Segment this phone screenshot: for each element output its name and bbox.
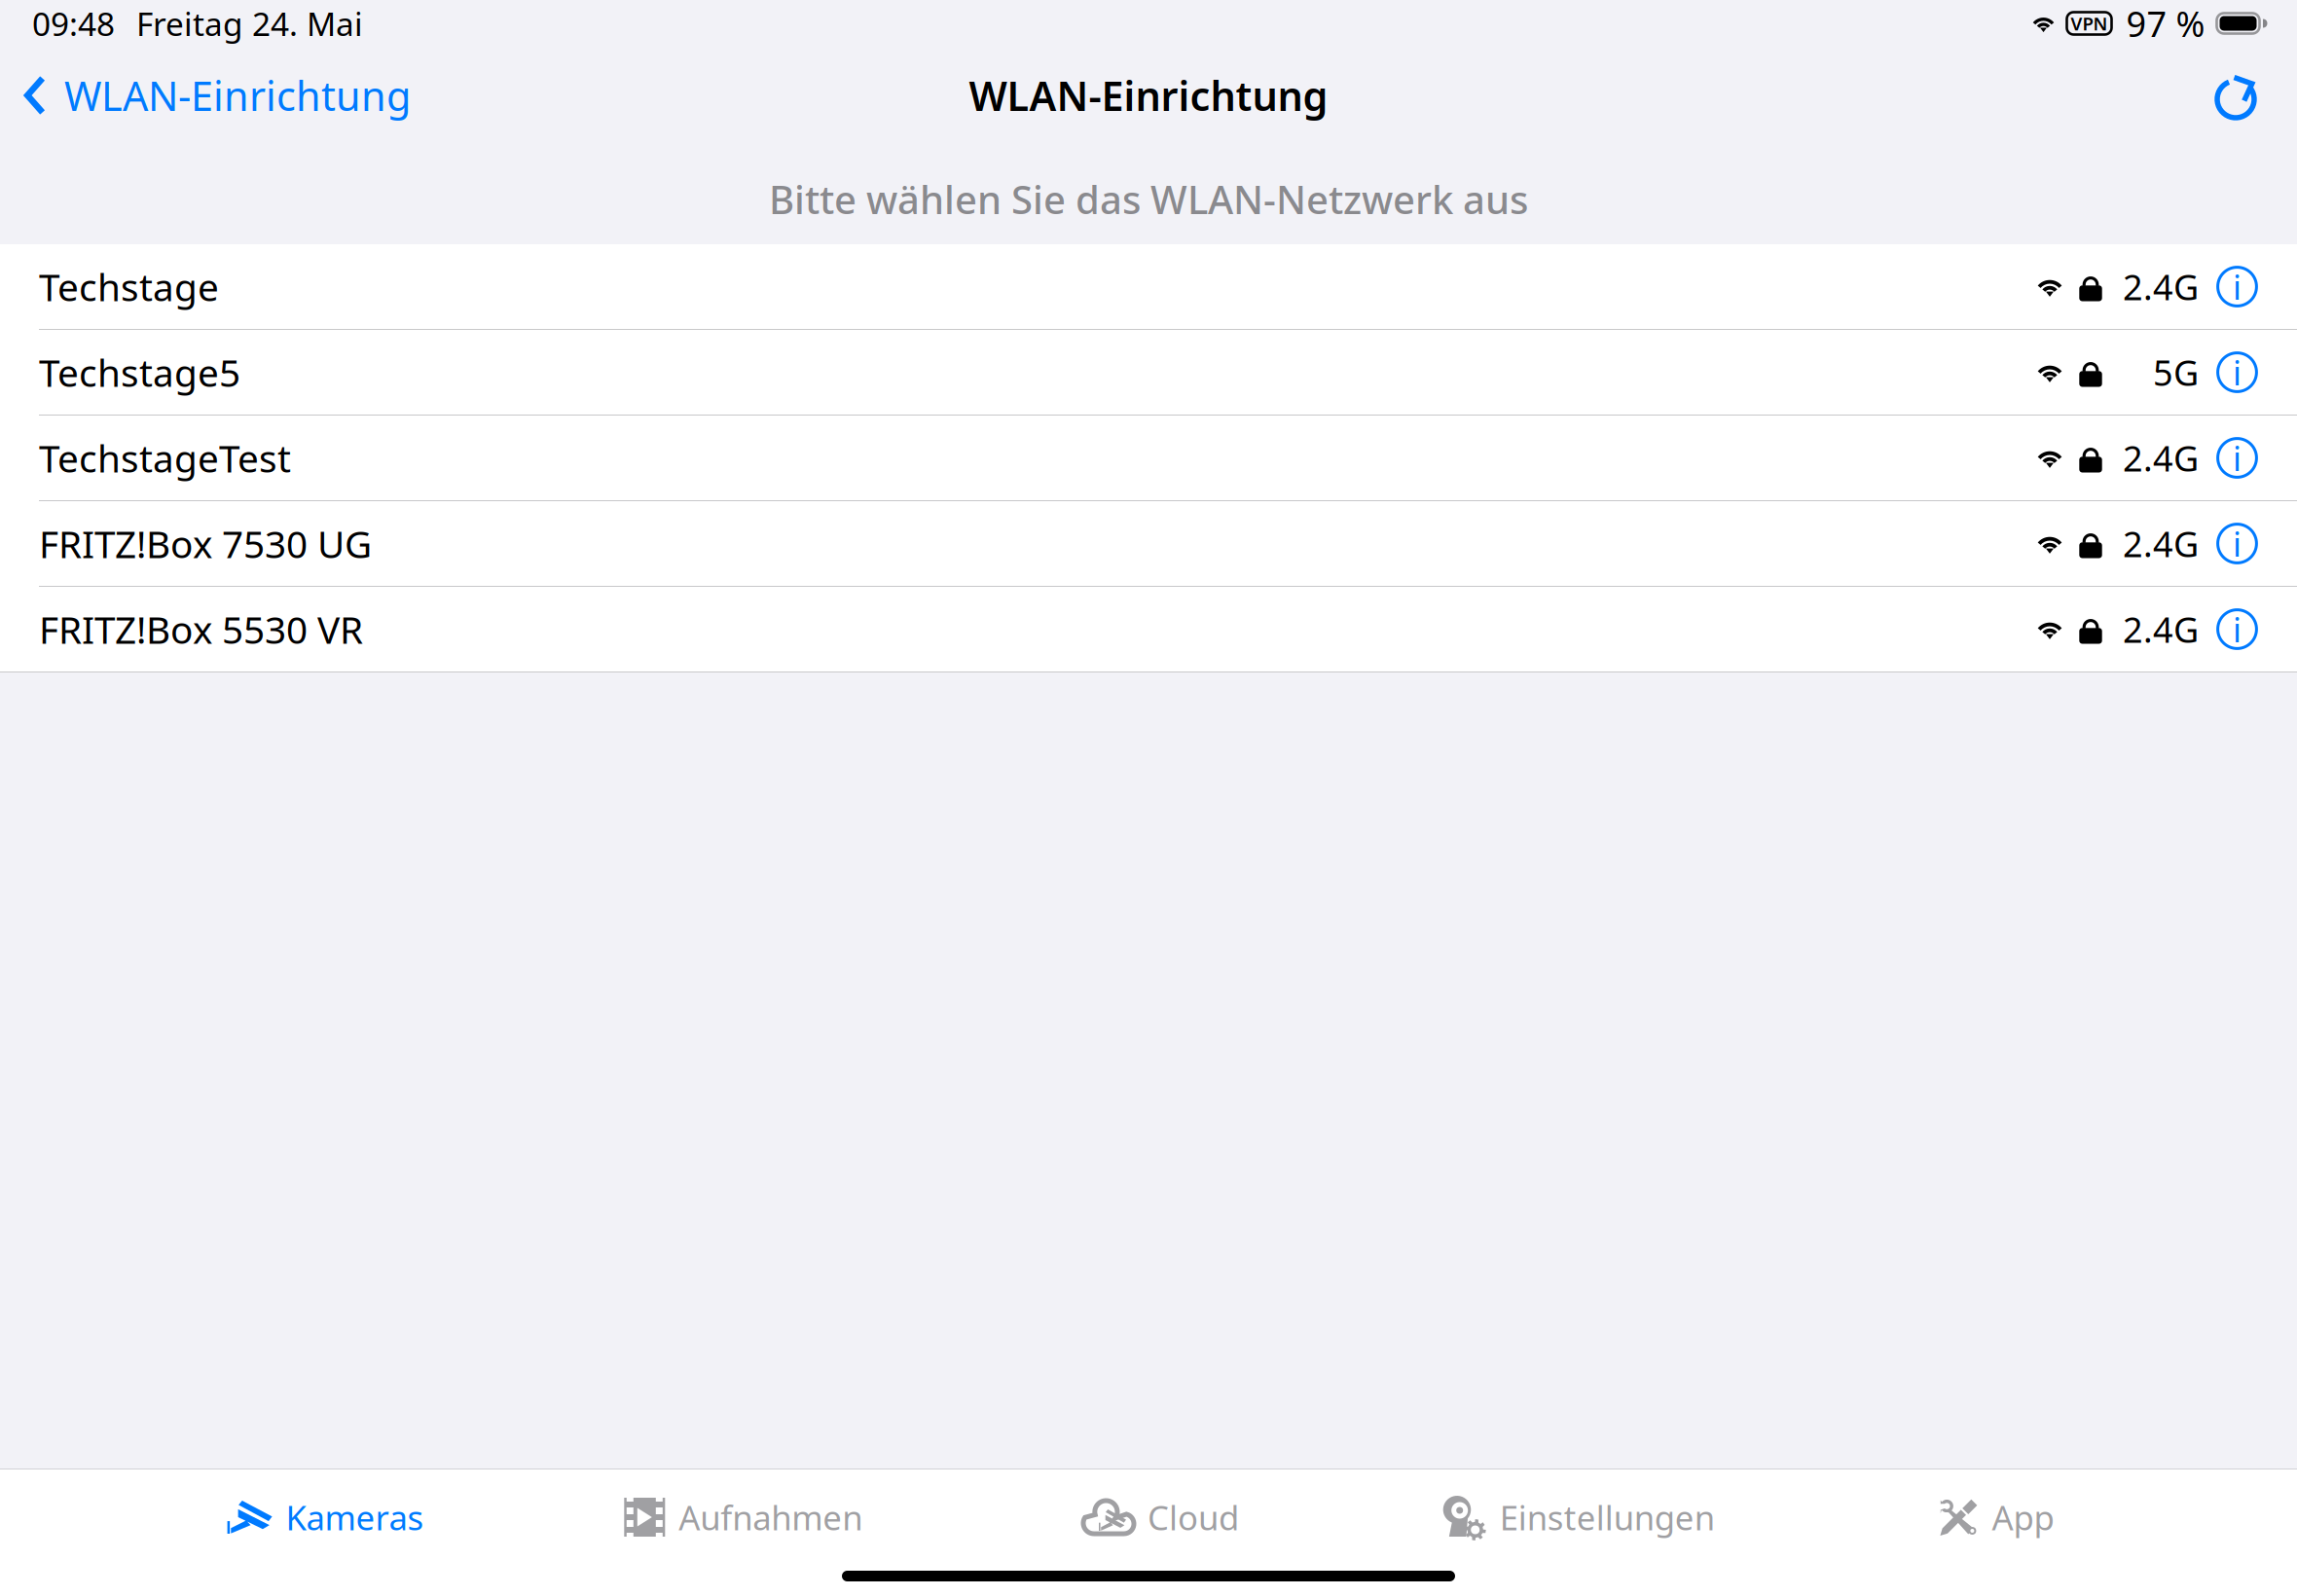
staticText: Freitag 24. Mai: [136, 2, 363, 45]
staticText: Aufnahmen: [679, 1495, 863, 1540]
button[interactable]: Kameras: [117, 1469, 535, 1566]
staticText: i: [2233, 264, 2242, 309]
staticText: 09:48: [32, 2, 115, 45]
staticText: TechstageTest: [39, 433, 291, 483]
button[interactable]: Aktualisieren: [2178, 47, 2297, 144]
staticText: Kameras: [286, 1495, 424, 1540]
staticText: i: [2233, 435, 2242, 480]
staticText: Techstage5: [39, 347, 240, 397]
button[interactable]: Aufnahmen: [535, 1469, 952, 1566]
staticText: 2.4G: [2123, 435, 2199, 481]
button[interactable]: App: [1788, 1469, 2206, 1566]
staticText: Techstage: [39, 262, 219, 312]
staticText: 2.4G: [2123, 520, 2199, 567]
button[interactable]: Informationen: [2216, 523, 2258, 564]
button[interactable]: Informationen: [2216, 608, 2258, 650]
staticText: App: [1992, 1495, 2054, 1540]
staticText: i: [2233, 521, 2242, 566]
staticText: 97 %: [2126, 0, 2205, 47]
staticText: FRITZ!Box 5530 VR: [39, 604, 363, 654]
button[interactable]: FRITZ!Box 5530 VR: [0, 587, 2297, 671]
button[interactable]: WLAN-Einrichtung: [0, 47, 430, 144]
staticText: Cloud: [1148, 1495, 1239, 1540]
staticText: Einstellungen: [1500, 1495, 1715, 1540]
button[interactable]: FRITZ!Box 7530 UG: [0, 501, 2297, 586]
button[interactable]: Techstage: [0, 244, 2297, 329]
staticText: i: [2233, 350, 2242, 395]
button[interactable]: Einstellungen: [1370, 1469, 1788, 1566]
button[interactable]: Informationen: [2216, 437, 2258, 479]
staticText: Bitte wählen Sie das WLAN-Netzwerk aus: [769, 173, 1528, 225]
button[interactable]: TechstageTest: [0, 416, 2297, 500]
staticText: WLAN-Einrichtung: [64, 69, 411, 122]
staticText: FRITZ!Box 7530 UG: [39, 519, 372, 568]
staticText: 2.4G: [2123, 263, 2199, 310]
button[interactable]: Informationen: [2216, 351, 2258, 393]
staticText: 5G: [2153, 349, 2199, 395]
staticText: WLAN-Einrichtung: [969, 69, 1328, 122]
button[interactable]: Techstage5: [0, 330, 2297, 415]
button[interactable]: Cloud: [952, 1469, 1370, 1566]
button[interactable]: Informationen: [2216, 266, 2258, 308]
staticText: VPN: [2071, 11, 2108, 35]
staticText: 2.4G: [2123, 606, 2199, 652]
staticText: i: [2233, 607, 2242, 652]
